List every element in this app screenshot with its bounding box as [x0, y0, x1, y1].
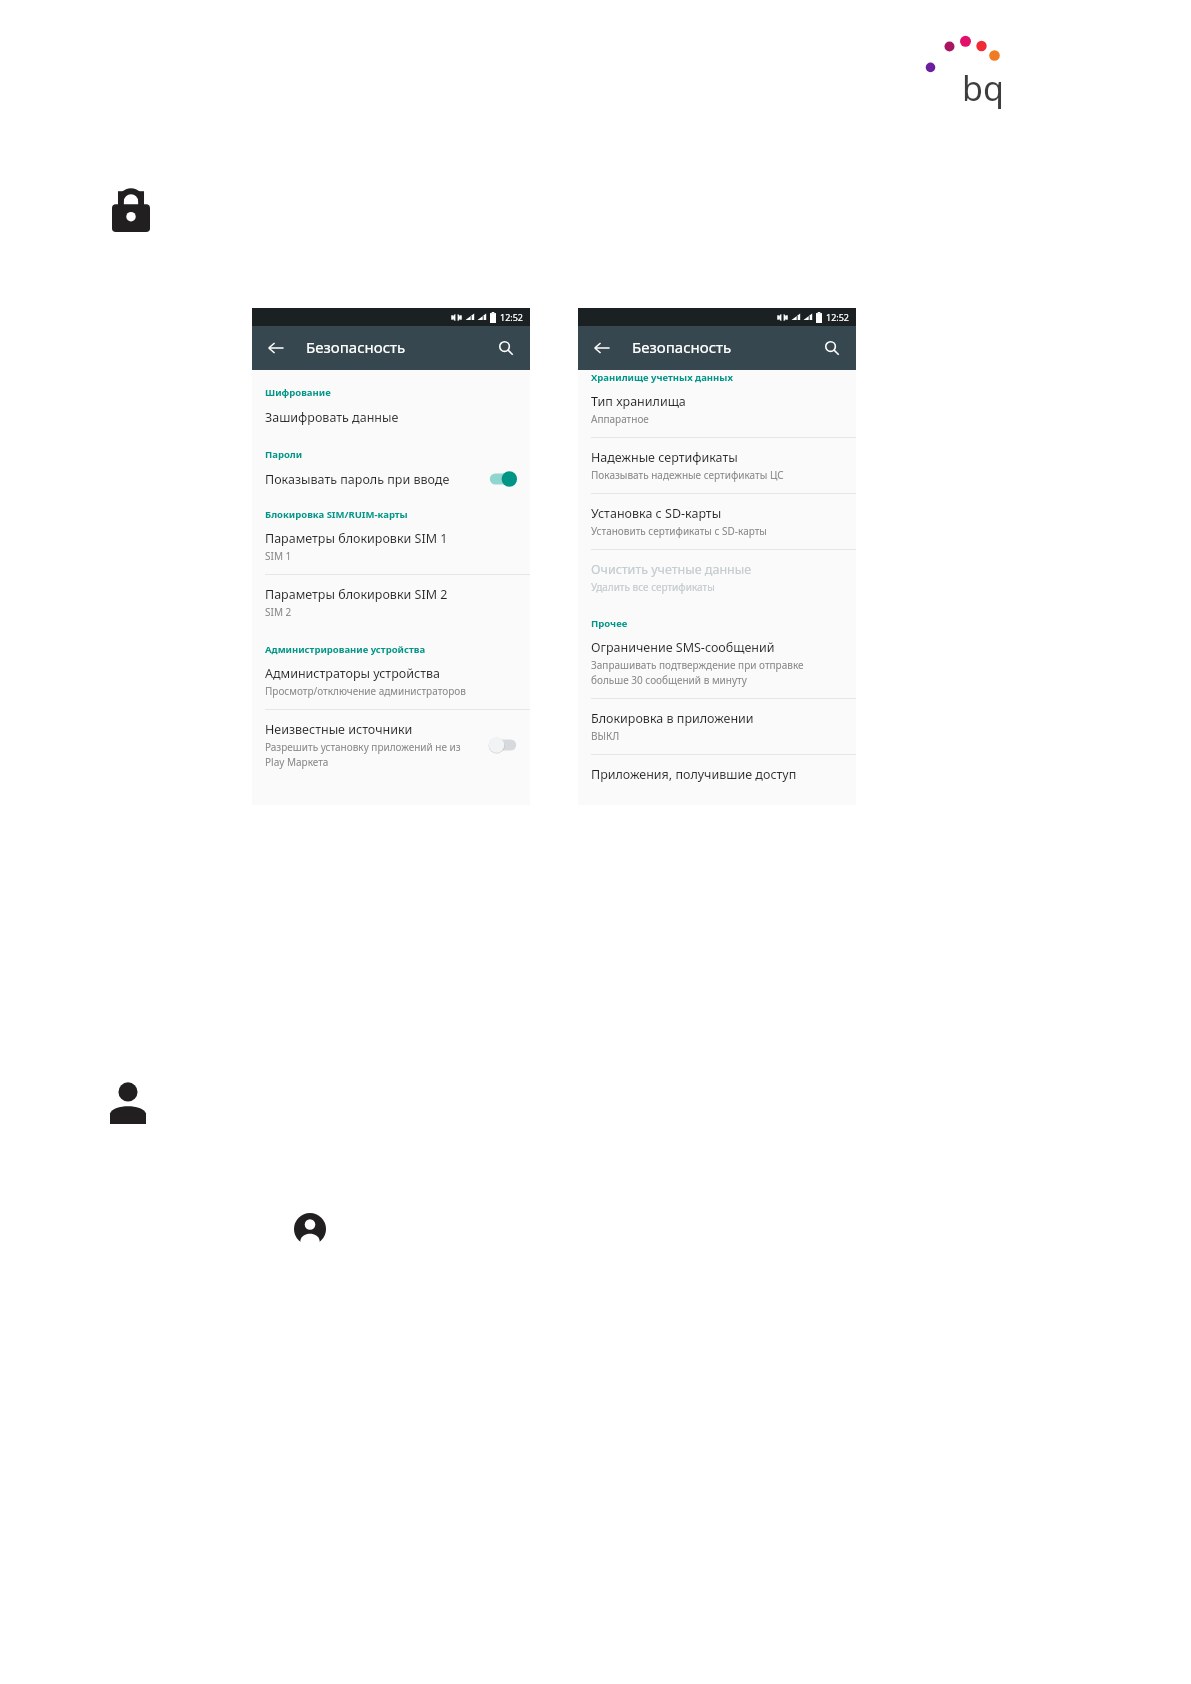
- staticText: Параметры блокировки SIM 2: [265, 586, 448, 603]
- staticText: bq: [962, 65, 1004, 111]
- staticText: Неизвестные источники: [265, 721, 413, 738]
- button[interactable]: Back: [586, 332, 618, 364]
- button[interactable]: Тип хранилища: [578, 389, 856, 437]
- button[interactable]: Очистить учетные данные: [578, 550, 856, 605]
- staticText: Удалить все сертификаты: [591, 580, 715, 594]
- button[interactable]: Параметры блокировки SIM 2: [252, 575, 530, 630]
- staticText: Очистить учетные данные: [591, 561, 752, 578]
- button[interactable]: Параметры блокировки SIM 1: [252, 525, 530, 574]
- button[interactable]: Блокировка в приложении: [578, 699, 856, 754]
- staticText: Аппаратное: [591, 412, 649, 426]
- staticText: Зашифровать данные: [265, 409, 399, 426]
- staticText: Администрирование устройства: [265, 643, 517, 656]
- staticText: Безопасность: [306, 337, 406, 357]
- staticText: Тип хранилища: [591, 393, 686, 410]
- staticText: Шифрование: [265, 386, 517, 399]
- staticText: Надежные сертификаты: [591, 449, 738, 466]
- button[interactable]: Ограничение SMS-сообщений: [578, 634, 856, 698]
- button[interactable]: Toggle on: [488, 470, 518, 488]
- staticText: Пароли: [265, 448, 517, 461]
- staticText: больше 30 сообщений в минуту: [591, 673, 747, 687]
- staticText: Play Маркета: [265, 755, 329, 769]
- staticText: Установка с SD-карты: [591, 505, 722, 522]
- staticText: Разрешить установку приложений не из: [265, 740, 461, 754]
- staticText: Хранилище учетных данных: [591, 371, 843, 384]
- staticText: Показывать пароль при вводе: [265, 471, 450, 488]
- button[interactable]: Неизвестные источники: [252, 710, 530, 781]
- button[interactable]: Администраторы устройства: [252, 660, 530, 709]
- staticText: Приложения, получившие доступ: [591, 766, 797, 783]
- staticText: Блокировка SIM/RUIM-карты: [265, 508, 517, 521]
- button[interactable]: Приложения, получившие доступ: [578, 755, 856, 796]
- staticText: Безопасность: [632, 337, 732, 357]
- button[interactable]: Toggle off: [488, 736, 518, 754]
- staticText: SIM 1: [265, 549, 292, 563]
- button[interactable]: Зашифровать данные: [252, 403, 530, 440]
- staticText: Прочее: [591, 617, 843, 630]
- staticText: Администраторы устройства: [265, 665, 440, 682]
- staticText: Параметры блокировки SIM 1: [265, 530, 448, 547]
- button[interactable]: Back: [260, 332, 292, 364]
- staticText: 12:52: [500, 311, 524, 323]
- button[interactable]: Показывать пароль при вводе: [252, 465, 530, 500]
- staticText: Запрашивать подтверждение при отправке: [591, 658, 804, 672]
- button[interactable]: Установка с SD-карты: [578, 494, 856, 549]
- staticText: Просмотр/отключение администраторов: [265, 684, 466, 698]
- staticText: 12:52: [826, 311, 850, 323]
- staticText: Установить сертификаты с SD-карты: [591, 524, 767, 538]
- button[interactable]: Search: [816, 332, 848, 364]
- staticText: ВЫКЛ: [591, 729, 620, 743]
- button[interactable]: Надежные сертификаты: [578, 438, 856, 493]
- button[interactable]: Search: [490, 332, 522, 364]
- staticText: Блокировка в приложении: [591, 710, 754, 727]
- staticText: SIM 2: [265, 605, 292, 619]
- staticText: Ограничение SMS-сообщений: [591, 639, 775, 656]
- staticText: Показывать надежные сертификаты ЦС: [591, 468, 784, 482]
